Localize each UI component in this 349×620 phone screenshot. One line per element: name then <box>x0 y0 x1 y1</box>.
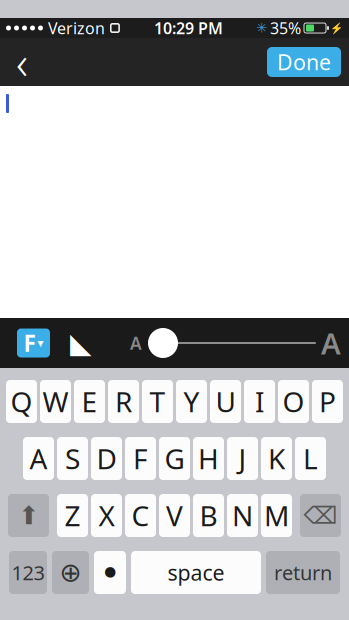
button[interactable]: space <box>131 551 261 594</box>
staticText: K <box>268 440 285 477</box>
button[interactable]: R <box>108 380 139 423</box>
staticText: return <box>274 559 332 586</box>
button[interactable]: ⌫ <box>300 494 341 537</box>
button[interactable]: H <box>193 437 224 480</box>
staticText: ⌫ <box>303 502 337 529</box>
staticText: H <box>198 440 219 477</box>
button[interactable]: D <box>91 437 122 480</box>
staticText: D <box>96 440 116 477</box>
staticText: Z <box>64 497 80 534</box>
staticText: U <box>215 383 235 420</box>
staticText: P <box>319 383 336 420</box>
staticText: W <box>42 383 68 420</box>
button[interactable]: K <box>261 437 292 480</box>
staticText: ◣ <box>70 327 92 359</box>
button[interactable]: A <box>23 437 54 480</box>
button[interactable]: C <box>125 494 156 537</box>
button[interactable]: Back <box>0 40 44 84</box>
button[interactable]: T <box>142 380 173 423</box>
staticText: V <box>166 497 183 534</box>
button[interactable]: F <box>125 437 156 480</box>
staticText: Y <box>183 383 199 420</box>
staticText: 10:29 PM <box>154 17 223 39</box>
staticText: F <box>23 328 35 358</box>
button[interactable]: J <box>227 437 258 480</box>
staticText: 123 <box>11 559 44 586</box>
button[interactable]: O <box>278 380 309 423</box>
staticText: F <box>133 440 148 477</box>
staticText: ✳ <box>256 20 267 35</box>
button[interactable]: Z <box>57 494 88 537</box>
staticText: ⏺ <box>104 561 115 583</box>
button[interactable]: ⏺ <box>94 551 126 594</box>
button[interactable]: S <box>57 437 88 480</box>
button[interactable]: V <box>159 494 190 537</box>
button[interactable]: ⬆ <box>8 494 49 537</box>
staticText: ▾ <box>37 336 43 350</box>
staticText: Q <box>10 383 32 420</box>
staticText: ⚡ <box>330 22 343 34</box>
staticText: R <box>115 383 132 420</box>
staticText: J <box>238 440 246 477</box>
button[interactable]: Done <box>267 47 341 77</box>
button[interactable]: ⊕ <box>52 551 89 594</box>
staticText: O <box>282 383 304 420</box>
button[interactable]: U <box>210 380 241 423</box>
staticText: space <box>167 558 224 587</box>
staticText: E <box>81 383 97 420</box>
button[interactable]: P <box>312 380 343 423</box>
staticText: A <box>321 323 341 362</box>
staticText: ⬆ <box>18 501 39 530</box>
button[interactable]: 123 <box>9 551 47 594</box>
staticText: Verizon <box>48 17 105 39</box>
staticText: N <box>232 497 253 534</box>
button[interactable]: I <box>244 380 275 423</box>
button[interactable]: N <box>227 494 258 537</box>
staticText: T <box>149 383 165 420</box>
staticText: L <box>303 440 318 477</box>
button[interactable]: L <box>295 437 326 480</box>
button[interactable]: Text color <box>64 326 98 360</box>
button[interactable]: Font <box>17 328 50 357</box>
staticText: M <box>264 497 289 534</box>
button[interactable]: M <box>261 494 292 537</box>
staticText: X <box>98 497 114 534</box>
button[interactable]: X <box>91 494 122 537</box>
staticText: C <box>131 497 149 534</box>
staticText: A <box>29 440 47 477</box>
button[interactable]: B <box>193 494 224 537</box>
button[interactable]: Q <box>6 380 37 423</box>
staticText: S <box>65 440 80 477</box>
staticText: A <box>130 331 142 354</box>
staticText: ⊕ <box>59 557 81 588</box>
button[interactable]: W <box>40 380 71 423</box>
button[interactable]: E <box>74 380 105 423</box>
button[interactable]: Y <box>176 380 207 423</box>
staticText: G <box>164 440 184 477</box>
button[interactable]: G <box>159 437 190 480</box>
staticText: B <box>199 497 217 534</box>
button[interactable]: return <box>266 551 340 594</box>
staticText: 35% <box>270 17 301 39</box>
staticText: Done <box>277 48 331 76</box>
staticText: I <box>255 383 264 420</box>
staticText: ‹ <box>16 32 28 92</box>
